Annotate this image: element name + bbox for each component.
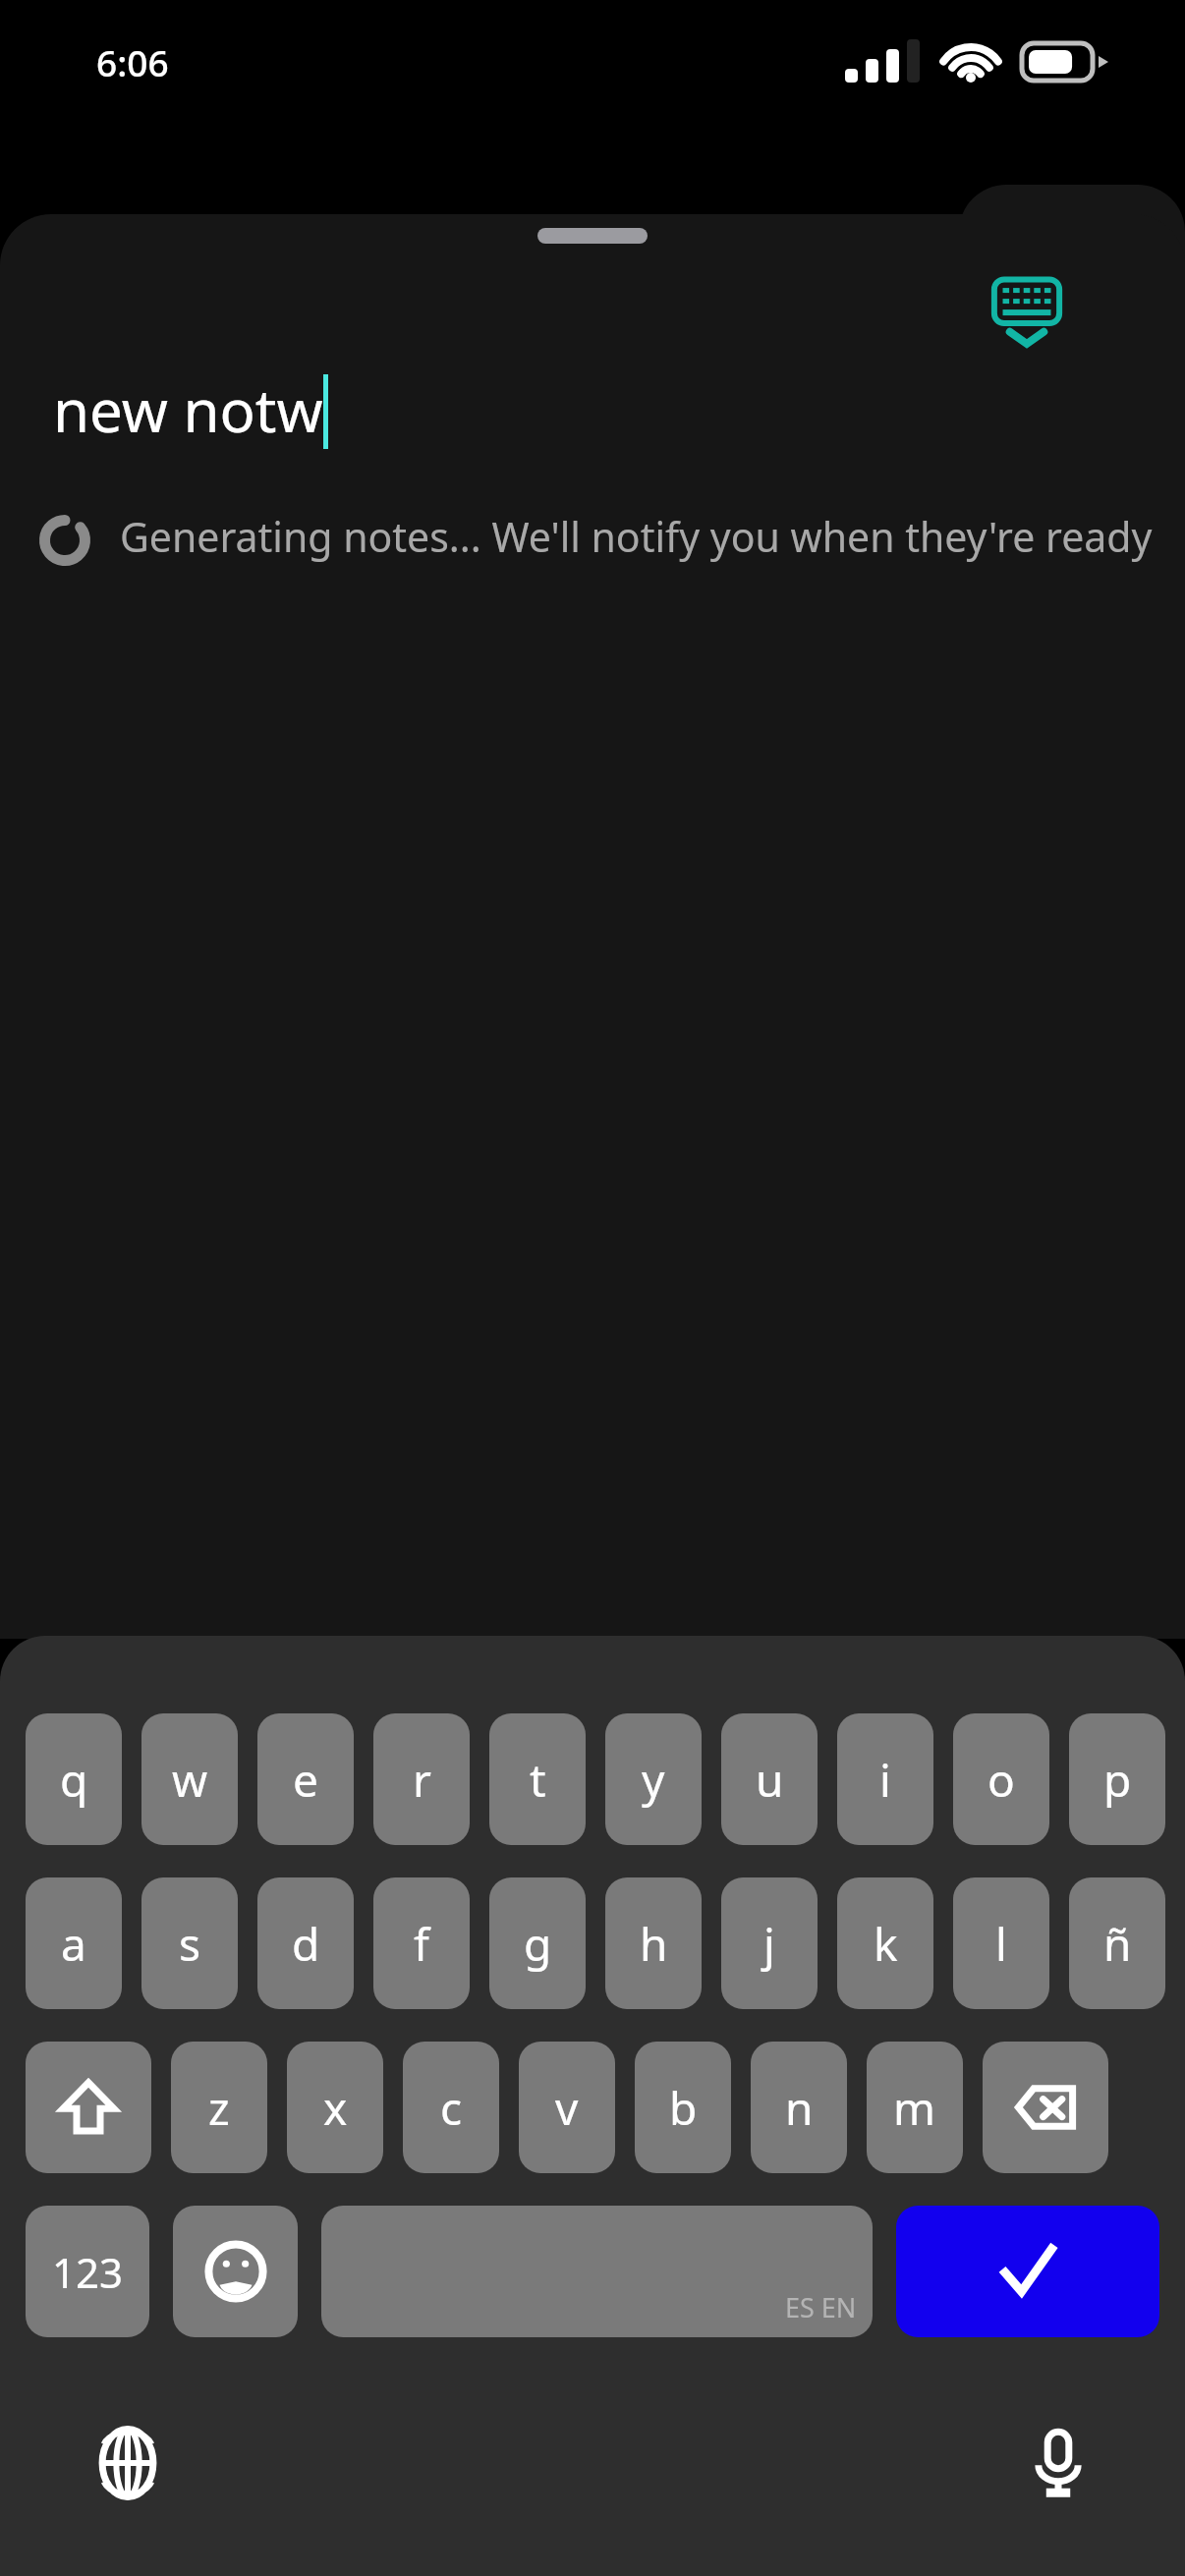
staticText: n: [785, 2077, 814, 2139]
button[interactable]: a: [26, 1877, 122, 2009]
staticText: q: [60, 1749, 88, 1811]
button[interactable]: w: [141, 1713, 238, 1845]
staticText: v: [555, 2077, 579, 2139]
button[interactable]: l: [953, 1877, 1049, 2009]
staticText: j: [763, 1913, 775, 1975]
staticText: new notw: [53, 369, 323, 450]
button[interactable]: e: [257, 1713, 354, 1845]
staticText: a: [61, 1913, 86, 1975]
staticText: s: [179, 1913, 201, 1975]
button[interactable]: o: [953, 1713, 1049, 1845]
button[interactable]: Emoji: [173, 2206, 298, 2337]
button[interactable]: r: [373, 1713, 470, 1845]
button[interactable]: h: [605, 1877, 702, 2009]
staticText: k: [874, 1913, 898, 1975]
button[interactable]: y: [605, 1713, 702, 1845]
staticText: x: [323, 2077, 348, 2139]
button[interactable]: Backspace: [983, 2042, 1108, 2173]
button[interactable]: b: [635, 2042, 731, 2173]
button[interactable]: d: [257, 1877, 354, 2009]
button[interactable]: f: [373, 1877, 470, 2009]
button[interactable]: t: [489, 1713, 586, 1845]
staticText: e: [293, 1749, 318, 1811]
staticText: m: [893, 2077, 936, 2139]
staticText: h: [640, 1913, 668, 1975]
staticText: 6:06: [96, 37, 169, 86]
staticText: c: [440, 2077, 463, 2139]
button[interactable]: Hide keyboard: [983, 269, 1071, 358]
button[interactable]: n: [751, 2042, 847, 2173]
staticText: Generating notes... We'll notify you whe…: [120, 509, 1153, 564]
staticText: w: [172, 1749, 208, 1811]
button[interactable]: i: [837, 1713, 933, 1845]
staticText: z: [208, 2077, 230, 2139]
staticText: d: [292, 1913, 320, 1975]
staticText: ES EN: [785, 2289, 857, 2325]
button[interactable]: ñ: [1069, 1877, 1165, 2009]
button[interactable]: Shift: [26, 2042, 151, 2173]
button[interactable]: Enter: [896, 2206, 1159, 2337]
button[interactable]: Voice input: [997, 2402, 1119, 2524]
staticText: u: [756, 1749, 784, 1811]
button[interactable]: c: [403, 2042, 499, 2173]
staticText: 123: [52, 2244, 124, 2300]
staticText: b: [669, 2077, 698, 2139]
button[interactable]: v: [519, 2042, 615, 2173]
staticText: t: [530, 1749, 546, 1811]
staticText: y: [642, 1749, 665, 1811]
staticText: p: [1103, 1749, 1132, 1811]
button[interactable]: Change language: [67, 2402, 189, 2524]
button[interactable]: Space: [321, 2206, 873, 2337]
button[interactable]: x: [287, 2042, 383, 2173]
staticText: l: [995, 1913, 1007, 1975]
button[interactable]: j: [721, 1877, 818, 2009]
button[interactable]: p: [1069, 1713, 1165, 1845]
staticText: g: [524, 1913, 552, 1975]
button[interactable]: q: [26, 1713, 122, 1845]
staticText: r: [413, 1749, 431, 1811]
staticText: i: [879, 1749, 891, 1811]
button[interactable]: k: [837, 1877, 933, 2009]
button[interactable]: 123: [26, 2206, 149, 2337]
button[interactable]: u: [721, 1713, 818, 1845]
button[interactable]: s: [141, 1877, 238, 2009]
staticText: f: [414, 1913, 429, 1975]
button[interactable]: m: [867, 2042, 963, 2173]
button[interactable]: z: [171, 2042, 267, 2173]
staticText: o: [987, 1749, 1015, 1811]
staticText: ñ: [1103, 1913, 1132, 1975]
button[interactable]: g: [489, 1877, 586, 2009]
